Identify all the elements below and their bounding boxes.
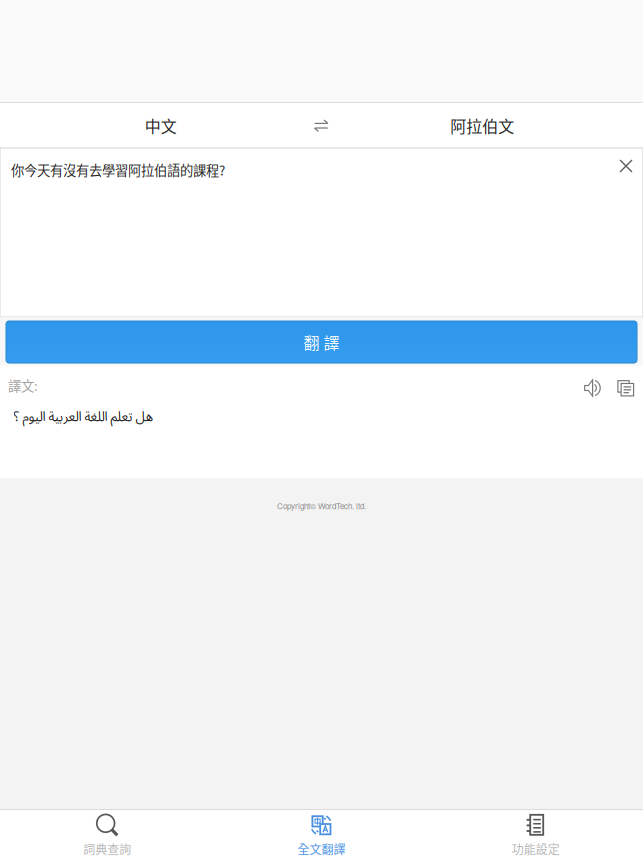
staticText: 詞典查詢 bbox=[83, 840, 131, 858]
button[interactable]: 翻 譯 bbox=[6, 321, 637, 363]
staticText: 中文 bbox=[145, 114, 177, 137]
button[interactable]: Clear text bbox=[620, 148, 643, 172]
staticText: 翻 譯 bbox=[303, 330, 339, 354]
staticText: هل تعلم اللغة العربية اليوم ؟ bbox=[13, 403, 153, 431]
staticText: Copyright© WordTech. ltd. bbox=[277, 500, 366, 512]
button[interactable]: 詞典查詢 bbox=[0, 808, 214, 858]
button[interactable]: 中文 bbox=[0, 103, 321, 148]
button[interactable]: 阿拉伯文 bbox=[321, 103, 643, 148]
staticText: 你今天有沒有去學習阿拉伯語的課程? bbox=[11, 160, 225, 179]
button[interactable]: Copy translation bbox=[603, 378, 635, 397]
staticText: 阿拉伯文 bbox=[450, 114, 514, 137]
staticText: 功能設定 bbox=[512, 840, 560, 858]
button[interactable]: Play pronunciation bbox=[584, 379, 603, 397]
staticText: 譯文: bbox=[8, 375, 38, 395]
button[interactable]: Swap languages bbox=[293, 103, 349, 148]
button[interactable]: 全文翻譯 bbox=[214, 808, 429, 858]
button[interactable]: 功能設定 bbox=[429, 808, 643, 858]
staticText: 全文翻譯 bbox=[297, 840, 345, 858]
